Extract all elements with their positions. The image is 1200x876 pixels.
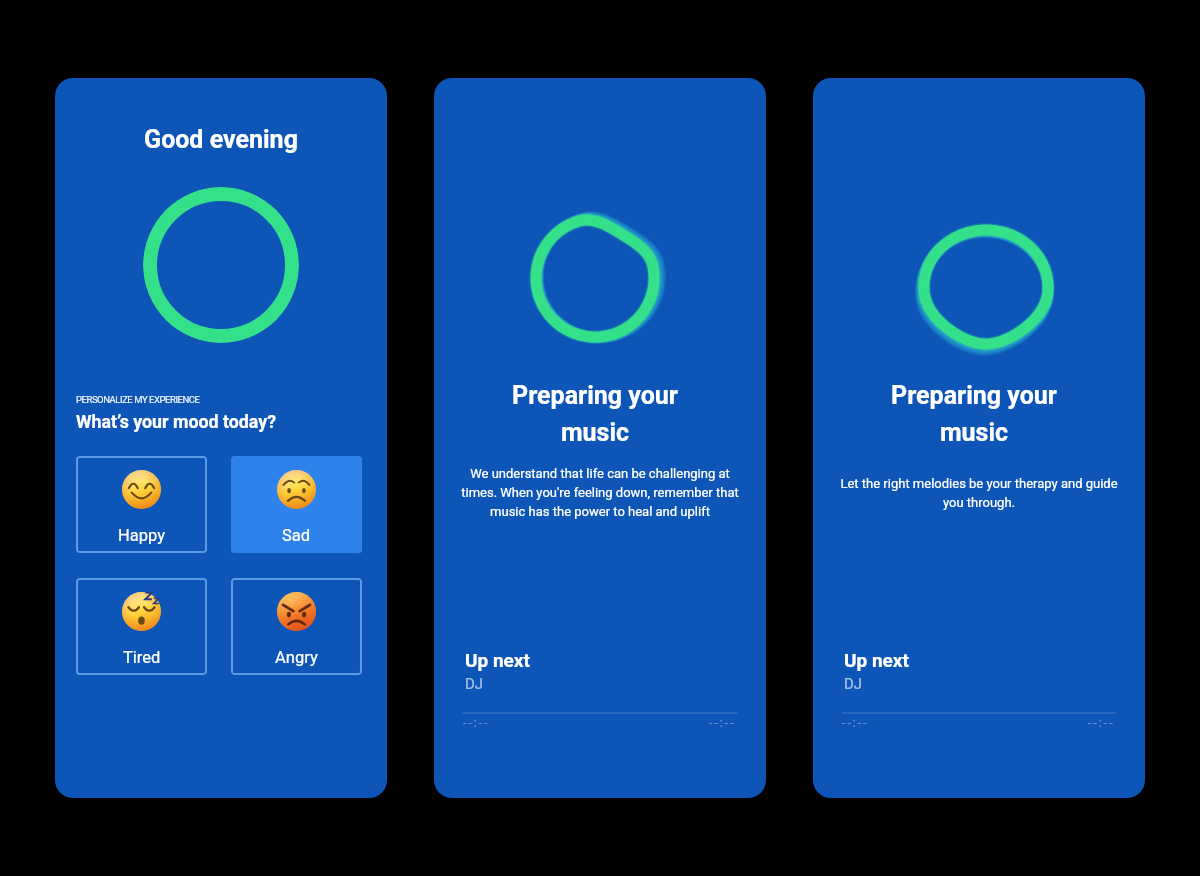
button[interactable]: Tired (76, 578, 207, 675)
staticText: Good evening (55, 125, 387, 154)
button[interactable]: Stop preparing music (495, 178, 695, 378)
button[interactable]: Stop preparing music (886, 187, 1086, 387)
staticText: Sad (282, 526, 311, 545)
button[interactable]: Happy (76, 456, 207, 553)
button[interactable]: Sad (231, 456, 362, 553)
staticText: We understand that life can be challengi… (461, 466, 739, 519)
button[interactable]: Up next (842, 647, 1116, 689)
staticText: Preparing your music (864, 381, 1084, 447)
staticText: --:-- (842, 716, 869, 730)
staticText: --:-- (709, 716, 736, 730)
staticText: Angry (275, 648, 318, 667)
button[interactable]: Start listening (143, 187, 299, 343)
staticText: Tired (123, 648, 161, 667)
staticText: Let the right melodies be your therapy a… (840, 476, 1118, 510)
staticText: Up next (465, 649, 530, 671)
button[interactable]: Up next (463, 647, 737, 689)
staticText: Happy (118, 526, 165, 545)
staticText: DJ (465, 675, 484, 693)
staticText: Preparing your music (485, 381, 705, 447)
staticText: --:-- (1088, 716, 1115, 730)
staticText: Up next (844, 649, 909, 671)
staticText: --:-- (463, 716, 490, 730)
staticText: DJ (844, 675, 863, 693)
button[interactable]: Angry (231, 578, 362, 675)
staticText: PERSONALIZE MY EXPERIENCE (76, 394, 200, 405)
staticText: What’s your mood today? (76, 411, 276, 432)
